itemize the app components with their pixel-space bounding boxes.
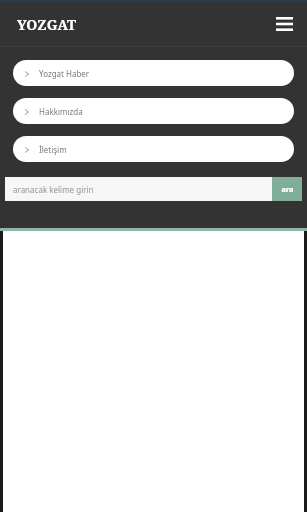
staticText: Hakkımızda <box>39 106 83 117</box>
staticText: Yozgat Haber <box>39 68 90 79</box>
staticText: ara <box>281 184 294 194</box>
staticText: YOZGAT <box>17 15 77 34</box>
button[interactable]: Yozgat Haber <box>13 60 294 86</box>
staticText: İletişim <box>39 144 67 155</box>
button[interactable]: Menu <box>271 11 297 37</box>
button[interactable]: ara <box>272 177 302 201</box>
button[interactable]: aranacak kelime girin <box>5 177 272 201</box>
staticText: aranacak kelime girin <box>13 184 94 195</box>
button[interactable]: Hakkımızda <box>13 98 294 124</box>
button[interactable]: İletişim <box>13 136 294 162</box>
